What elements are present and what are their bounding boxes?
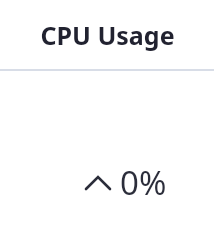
staticText: CPU Usage [40, 18, 175, 52]
staticText: 0% [120, 160, 167, 205]
button[interactable]: Trending up [85, 160, 167, 205]
other: Trending up [85, 168, 111, 198]
